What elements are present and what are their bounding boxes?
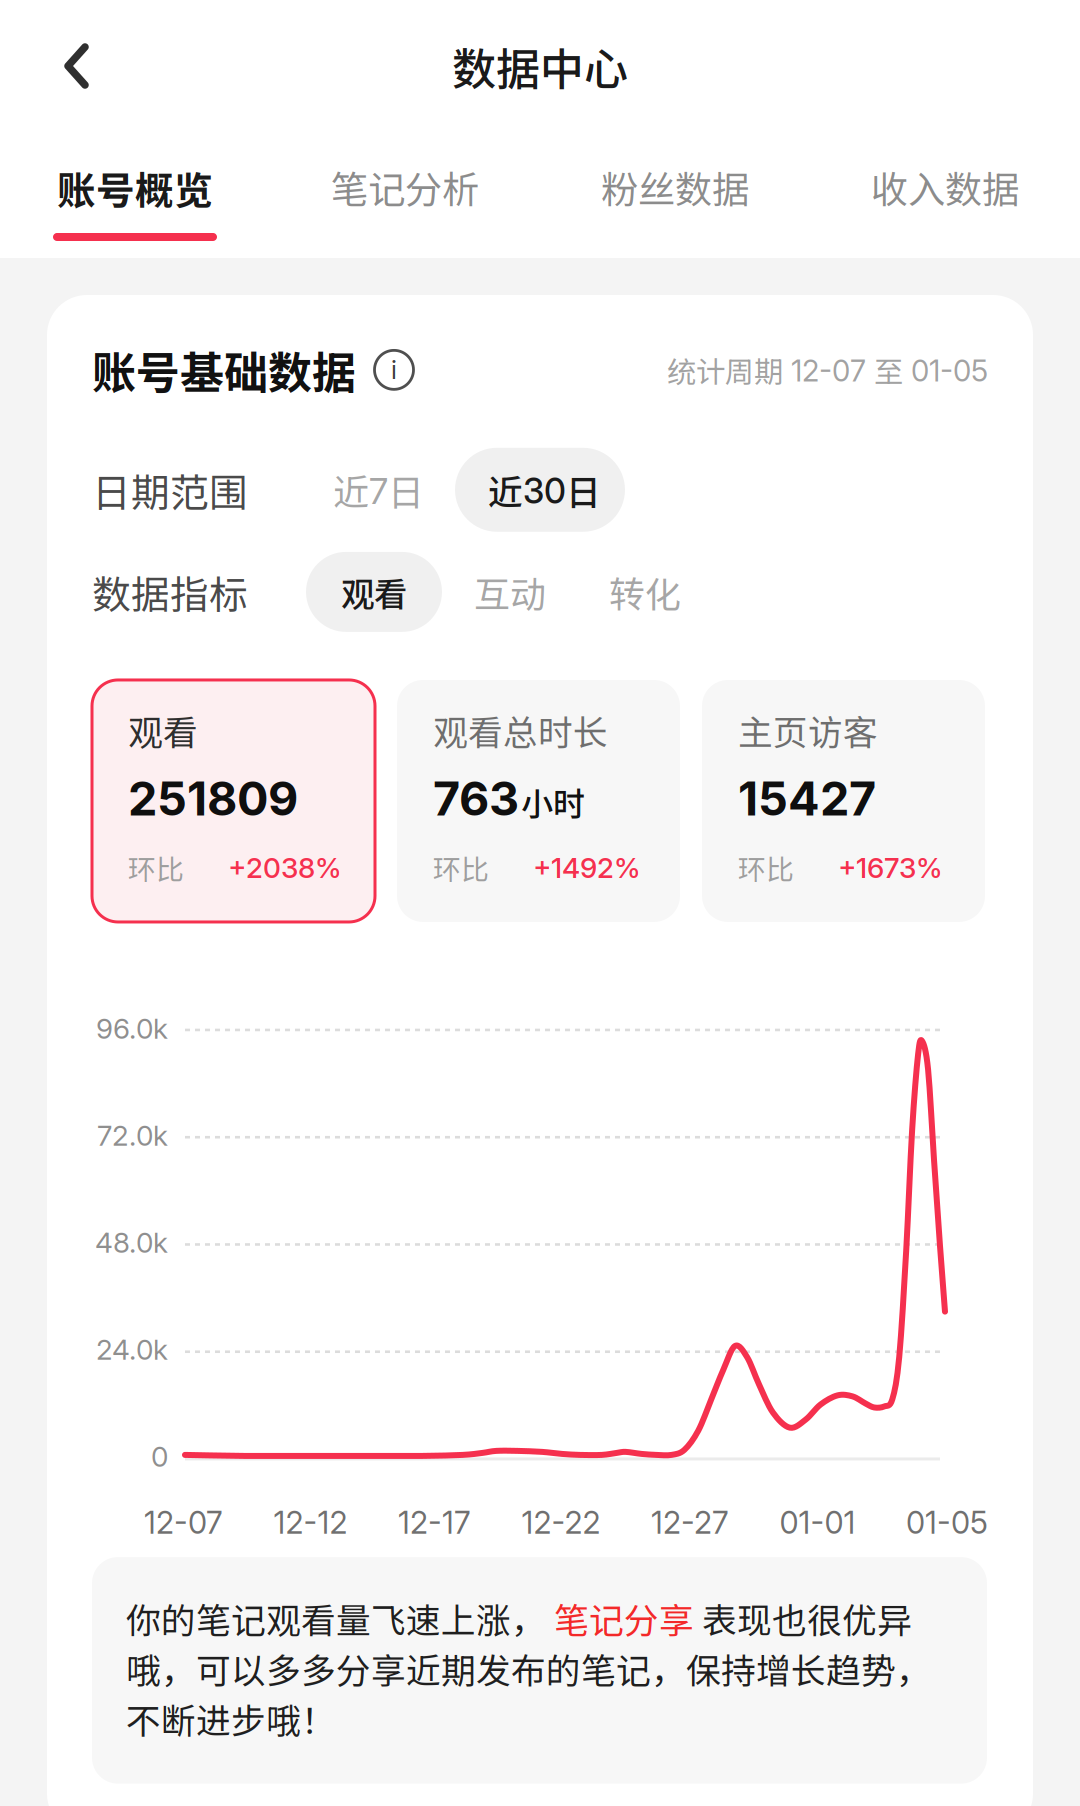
staticText: 近30日	[488, 465, 601, 515]
staticText: 01-05	[906, 1504, 988, 1541]
staticText: 环比	[433, 848, 489, 888]
staticText: 12-27	[651, 1504, 729, 1541]
staticText: 转化	[609, 566, 681, 618]
button[interactable]: 互动	[442, 544, 578, 640]
staticText: 主页访客	[738, 705, 878, 755]
staticText: +2038%	[228, 851, 342, 885]
staticText: 12-12	[273, 1504, 347, 1541]
staticText: 763	[433, 770, 519, 827]
button[interactable]: 观看总时长	[397, 680, 680, 922]
staticText: 24.0k	[96, 1332, 168, 1366]
button[interactable]: 返回	[0, 25, 115, 107]
staticText: 12-22	[521, 1504, 600, 1541]
button[interactable]: 观看	[92, 680, 375, 922]
staticText: 近7日	[333, 464, 424, 516]
button[interactable]: 说明	[356, 350, 414, 390]
staticText: 观看	[128, 705, 198, 755]
staticText: 0	[151, 1439, 168, 1473]
staticText: 12-07	[144, 1504, 223, 1541]
staticText: 15427	[738, 770, 876, 827]
staticText: 12-17	[398, 1504, 471, 1541]
button[interactable]: 笔记分析	[270, 132, 540, 258]
button[interactable]: 观看	[248, 552, 442, 632]
staticText: 账号概览	[57, 160, 213, 216]
staticText: +1492%	[533, 851, 641, 885]
staticText: 你的笔记观看量飞速上涨， 笔记分享 表现也很优异哦，可以多多分享近期发布的笔记，…	[126, 1593, 931, 1744]
staticText: 数据指标	[92, 564, 248, 620]
button[interactable]: 账号概览	[0, 132, 270, 258]
staticText: 环比	[128, 848, 184, 888]
button[interactable]: 近30日	[455, 448, 625, 532]
staticText: 互动	[474, 566, 546, 618]
staticText: 粉丝数据	[601, 160, 749, 214]
button[interactable]: 粉丝数据	[540, 132, 810, 258]
staticText: 251809	[128, 770, 298, 827]
staticText: 收入数据	[871, 160, 1019, 214]
staticText: 账号基础数据	[92, 338, 356, 402]
staticText: 小时	[521, 778, 585, 825]
button[interactable]: 转化	[578, 544, 685, 640]
staticText: 统计周期 12-07 至 01-05	[667, 349, 988, 391]
staticText: 观看总时长	[433, 705, 608, 755]
button[interactable]: 收入数据	[810, 132, 1080, 258]
staticText: 01-01	[779, 1504, 855, 1541]
staticText: i	[391, 354, 397, 385]
staticText: 数据中心	[452, 34, 628, 98]
staticText: +1673%	[838, 851, 943, 885]
staticText: 72.0k	[97, 1118, 168, 1152]
button[interactable]: 主页访客	[702, 680, 985, 922]
staticText: 日期范围	[92, 462, 248, 518]
staticText: 48.0k	[95, 1225, 168, 1259]
staticText: 环比	[738, 848, 794, 888]
staticText: 96.0k	[96, 1011, 168, 1045]
staticText: 观看	[341, 568, 407, 616]
staticText: 笔记分析	[331, 160, 479, 214]
button[interactable]: 近7日	[248, 440, 455, 540]
